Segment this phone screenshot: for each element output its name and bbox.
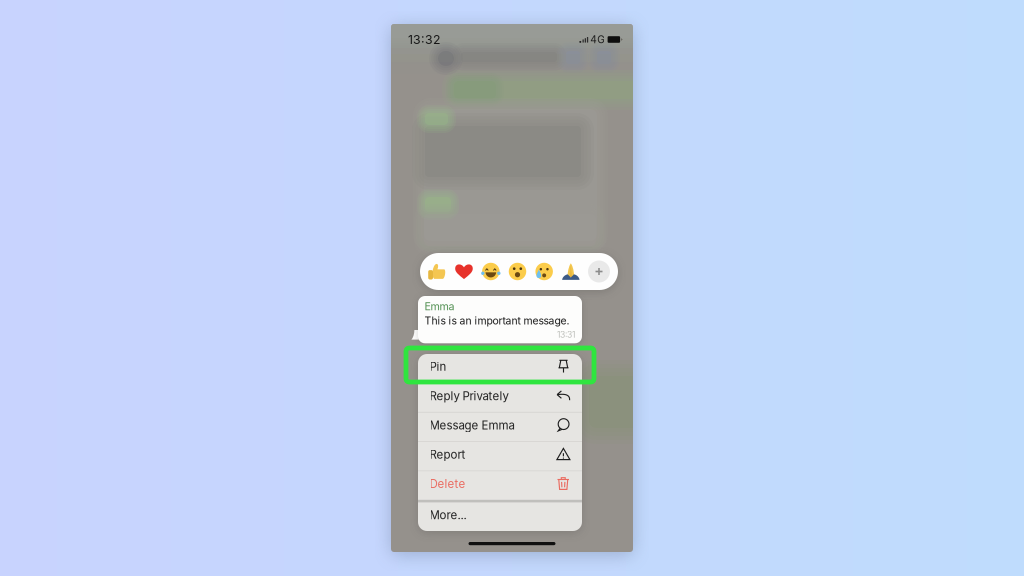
button[interactable]: More...	[418, 502, 582, 531]
button[interactable]: Message Emma	[418, 413, 582, 441]
staticText: Delete	[429, 477, 465, 491]
button[interactable]: Delete	[418, 471, 582, 500]
button[interactable]: Pin	[418, 354, 582, 383]
button[interactable]: Reply Privately	[418, 383, 582, 412]
staticText: This is an important message.	[424, 314, 569, 327]
staticText: Message Emma	[429, 418, 514, 432]
staticText: 13:32	[408, 32, 440, 47]
button[interactable]: React heart	[455, 262, 474, 280]
staticText: More...	[429, 508, 466, 522]
button[interactable]: React surprised	[508, 262, 527, 280]
button[interactable]: React thumbs up	[428, 262, 447, 280]
staticText: Reply Privately	[429, 389, 508, 403]
staticText: 13:31	[557, 329, 575, 340]
staticText: Emma	[424, 300, 454, 313]
button[interactable]: React crying	[535, 262, 554, 280]
staticText: 4G	[590, 33, 605, 46]
button[interactable]: React pray	[561, 262, 580, 280]
staticText: Report	[429, 448, 465, 462]
staticText: Pin	[429, 360, 446, 374]
button[interactable]: React laughing	[481, 262, 500, 280]
button[interactable]: Report	[418, 442, 582, 470]
button[interactable]: More reactions	[588, 260, 610, 282]
